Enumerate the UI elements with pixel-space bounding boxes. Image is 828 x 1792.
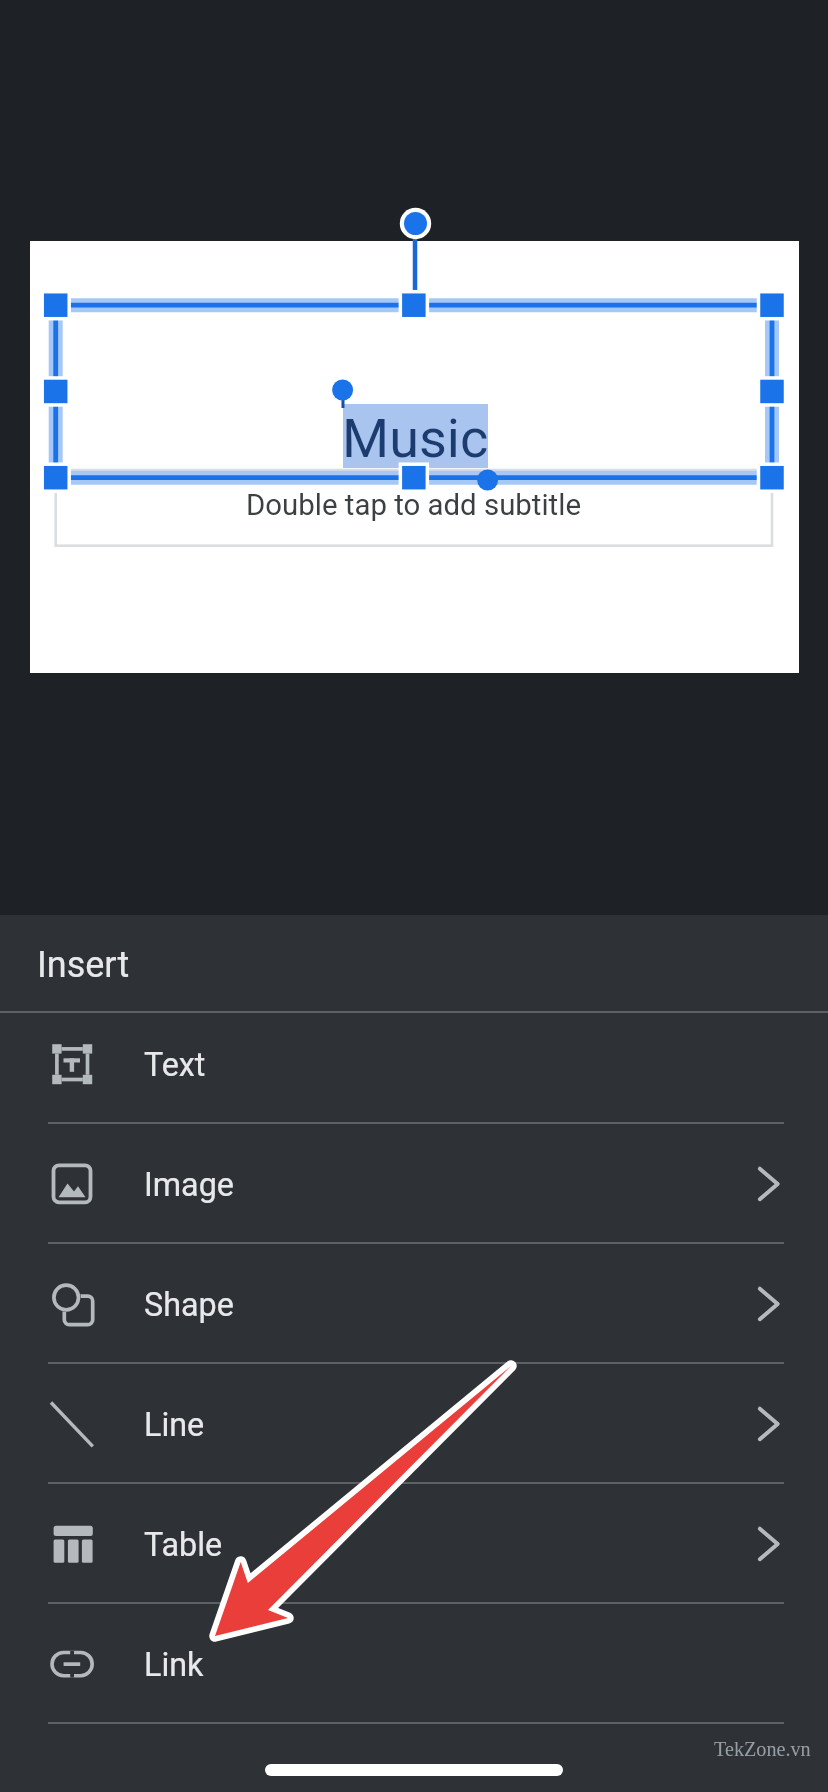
- staticText: Shape: [144, 1286, 234, 1324]
- button[interactable]: Line: [0, 1362, 828, 1482]
- staticText: Double tap to add subtitle: [246, 488, 581, 522]
- staticText: Link: [144, 1646, 204, 1684]
- staticText: Line: [144, 1406, 205, 1444]
- staticText: Table: [144, 1526, 223, 1564]
- other: Insert shape: [736, 1280, 784, 1328]
- staticText: TekZone.vn: [714, 1738, 811, 1760]
- other: Insert line: [736, 1400, 784, 1448]
- other: Insert table: [736, 1520, 784, 1568]
- staticText: Insert: [37, 944, 130, 986]
- button[interactable]: Shape: [0, 1242, 828, 1362]
- staticText: Music: [342, 407, 489, 470]
- other: Insert image: [736, 1160, 784, 1208]
- staticText: Image: [144, 1166, 234, 1204]
- staticText: Text: [144, 1046, 206, 1084]
- button[interactable]: Link: [0, 1602, 828, 1722]
- button[interactable]: Text: [0, 1002, 828, 1122]
- button[interactable]: Table: [0, 1482, 828, 1602]
- button[interactable]: Image: [0, 1122, 828, 1242]
